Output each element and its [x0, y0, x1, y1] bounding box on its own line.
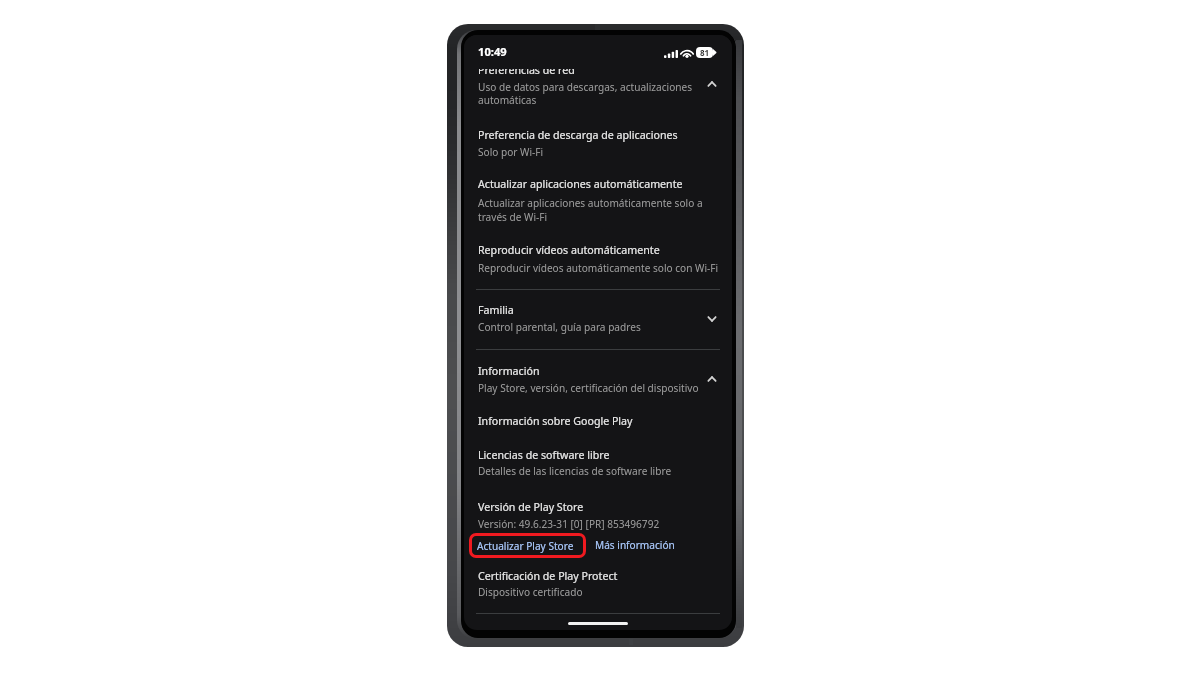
staticText: Certificación de Play Protect	[478, 569, 618, 584]
button[interactable]: Certificación de Play Protect	[464, 560, 732, 606]
staticText: Familia	[478, 303, 514, 318]
staticText: Uso de datos para descargas, actualizaci…	[478, 80, 693, 94]
staticText: Actualizar aplicaciones automáticamente …	[478, 196, 703, 210]
staticText: Licencias de software libre	[478, 448, 610, 463]
button[interactable]: Licencias de software libre	[464, 442, 732, 488]
staticText: Dispositivo certificado	[478, 585, 583, 599]
button[interactable]: Collapse Preferencias de red	[699, 71, 725, 97]
staticText: Información sobre Google Play	[478, 414, 633, 429]
button[interactable]: Información sobre Google Play	[464, 408, 732, 442]
staticText: Preferencia de descarga de aplicaciones	[478, 128, 678, 143]
staticText: Control parental, guía para padres	[478, 320, 641, 334]
staticText: Reproducir vídeos automáticamente	[478, 243, 660, 258]
staticText: Reproducir vídeos automáticamente solo c…	[478, 261, 719, 275]
staticText: Solo por Wi-Fi	[478, 145, 544, 159]
button[interactable]: Versión de Play Store	[464, 492, 732, 532]
button[interactable]: Preferencia de descarga de aplicaciones	[464, 117, 732, 165]
staticText: 10:49	[478, 44, 507, 59]
staticText: Versión de Play Store	[478, 500, 584, 515]
button[interactable]: Actualizar aplicaciones automáticamente	[464, 166, 732, 230]
button[interactable]: Información	[464, 352, 732, 402]
staticText: 81	[700, 47, 710, 58]
staticText: Preferencias de red	[478, 63, 575, 78]
button[interactable]: Collapse Información	[699, 366, 725, 392]
staticText: Detalles de las licencias de software li…	[478, 464, 672, 478]
button[interactable]: Actualizar Play Store	[469, 533, 586, 558]
staticText: automáticas	[478, 93, 537, 107]
button[interactable]: Expand Familia	[699, 306, 725, 332]
staticText: Información	[478, 364, 540, 379]
staticText: Versión: 49.6.23-31 [0] [PR] 853496792	[478, 517, 660, 531]
button[interactable]: Más información	[595, 538, 675, 552]
button[interactable]: Familia	[464, 292, 732, 348]
staticText: Actualizar aplicaciones automáticamente	[478, 177, 683, 192]
staticText: través de Wi-Fi	[478, 210, 548, 224]
staticText: Más información	[595, 538, 675, 552]
staticText: Actualizar Play Store	[477, 539, 574, 553]
button[interactable]: Reproducir vídeos automáticamente	[464, 232, 732, 282]
button[interactable]: Preferencias de red	[464, 56, 732, 108]
staticText: Play Store, versión, certificación del d…	[478, 381, 699, 395]
